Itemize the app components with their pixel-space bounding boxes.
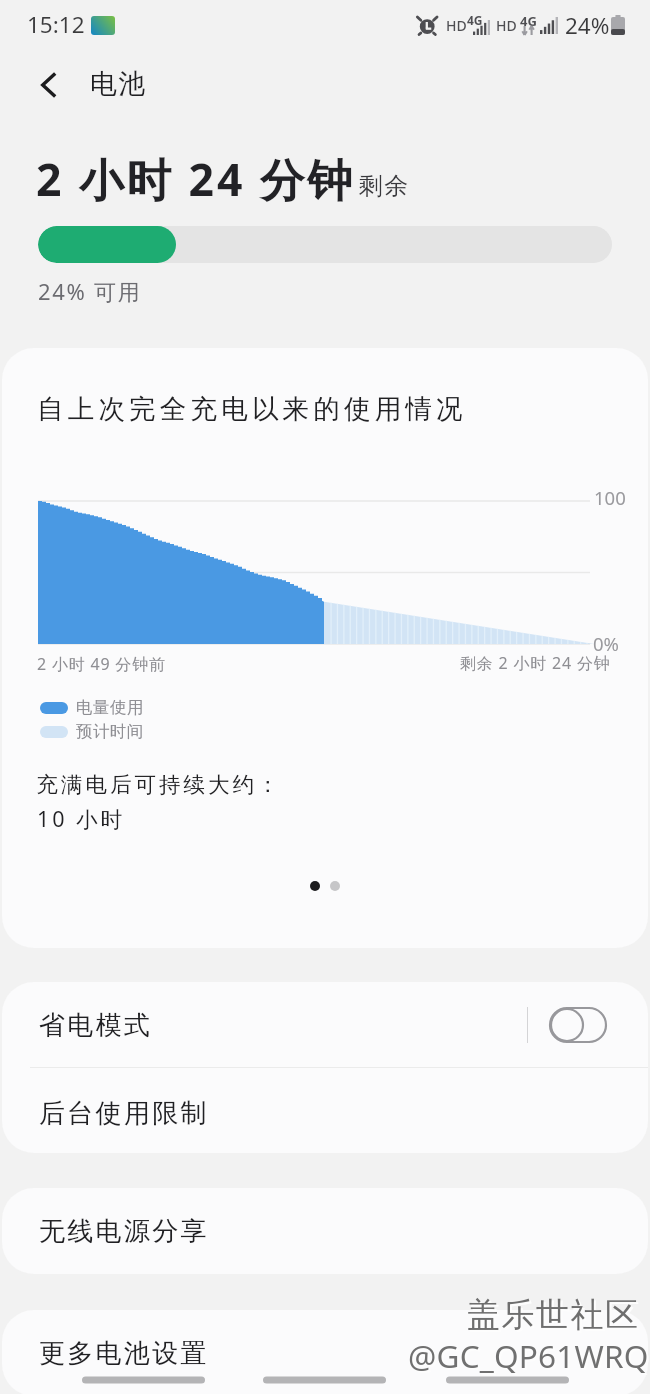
button[interactable]: 更多电池设置 bbox=[2, 1310, 648, 1394]
staticText: 0% bbox=[593, 631, 619, 656]
button[interactable]: Power saving mode toggle bbox=[549, 1007, 607, 1043]
button[interactable]: 无线电源分享 bbox=[2, 1188, 648, 1274]
staticText: 无线电源分享 bbox=[39, 1215, 209, 1248]
staticText: 2 小时 49 分钟前 bbox=[37, 653, 166, 675]
staticText: 100 bbox=[594, 485, 626, 510]
staticText: HD bbox=[496, 16, 517, 35]
staticText: 预计时间 bbox=[76, 721, 144, 742]
staticText: 24% 可用 bbox=[38, 276, 142, 306]
staticText: 充满电后可持续大约： bbox=[35, 771, 280, 798]
staticText: 4G bbox=[467, 12, 483, 28]
staticText: 盖乐世社区 bbox=[469, 1296, 642, 1338]
button[interactable]: Back bbox=[26, 61, 74, 109]
staticText: 4G bbox=[520, 12, 537, 30]
staticText: 剩余 2 小时 24 分钟 bbox=[460, 652, 611, 674]
staticText: 更多电池设置 bbox=[39, 1337, 209, 1370]
staticText: 电池 bbox=[90, 67, 147, 101]
staticText: 自上次完全充电以来的使用情况 bbox=[37, 392, 467, 425]
staticText: HD bbox=[446, 16, 467, 35]
staticText: 15:12 bbox=[27, 9, 85, 40]
staticText: 10 小时 bbox=[37, 804, 126, 833]
staticText: 24% bbox=[565, 10, 610, 41]
staticText: @GC_QP61WRQ bbox=[408, 1334, 649, 1377]
staticText: 剩余 bbox=[358, 171, 409, 201]
staticText: 盖乐世社区 bbox=[467, 1294, 640, 1336]
staticText: 电量使用 bbox=[76, 697, 144, 718]
staticText: @GC_QP61WRQ bbox=[410, 1336, 650, 1379]
button[interactable]: 后台使用限制 bbox=[2, 1071, 648, 1153]
staticText: 省电模式 bbox=[39, 1009, 153, 1042]
staticText: 后台使用限制 bbox=[39, 1097, 209, 1130]
button[interactable]: 省电模式 bbox=[2, 982, 648, 1068]
staticText: 2 小时 24 分钟 bbox=[36, 148, 356, 209]
